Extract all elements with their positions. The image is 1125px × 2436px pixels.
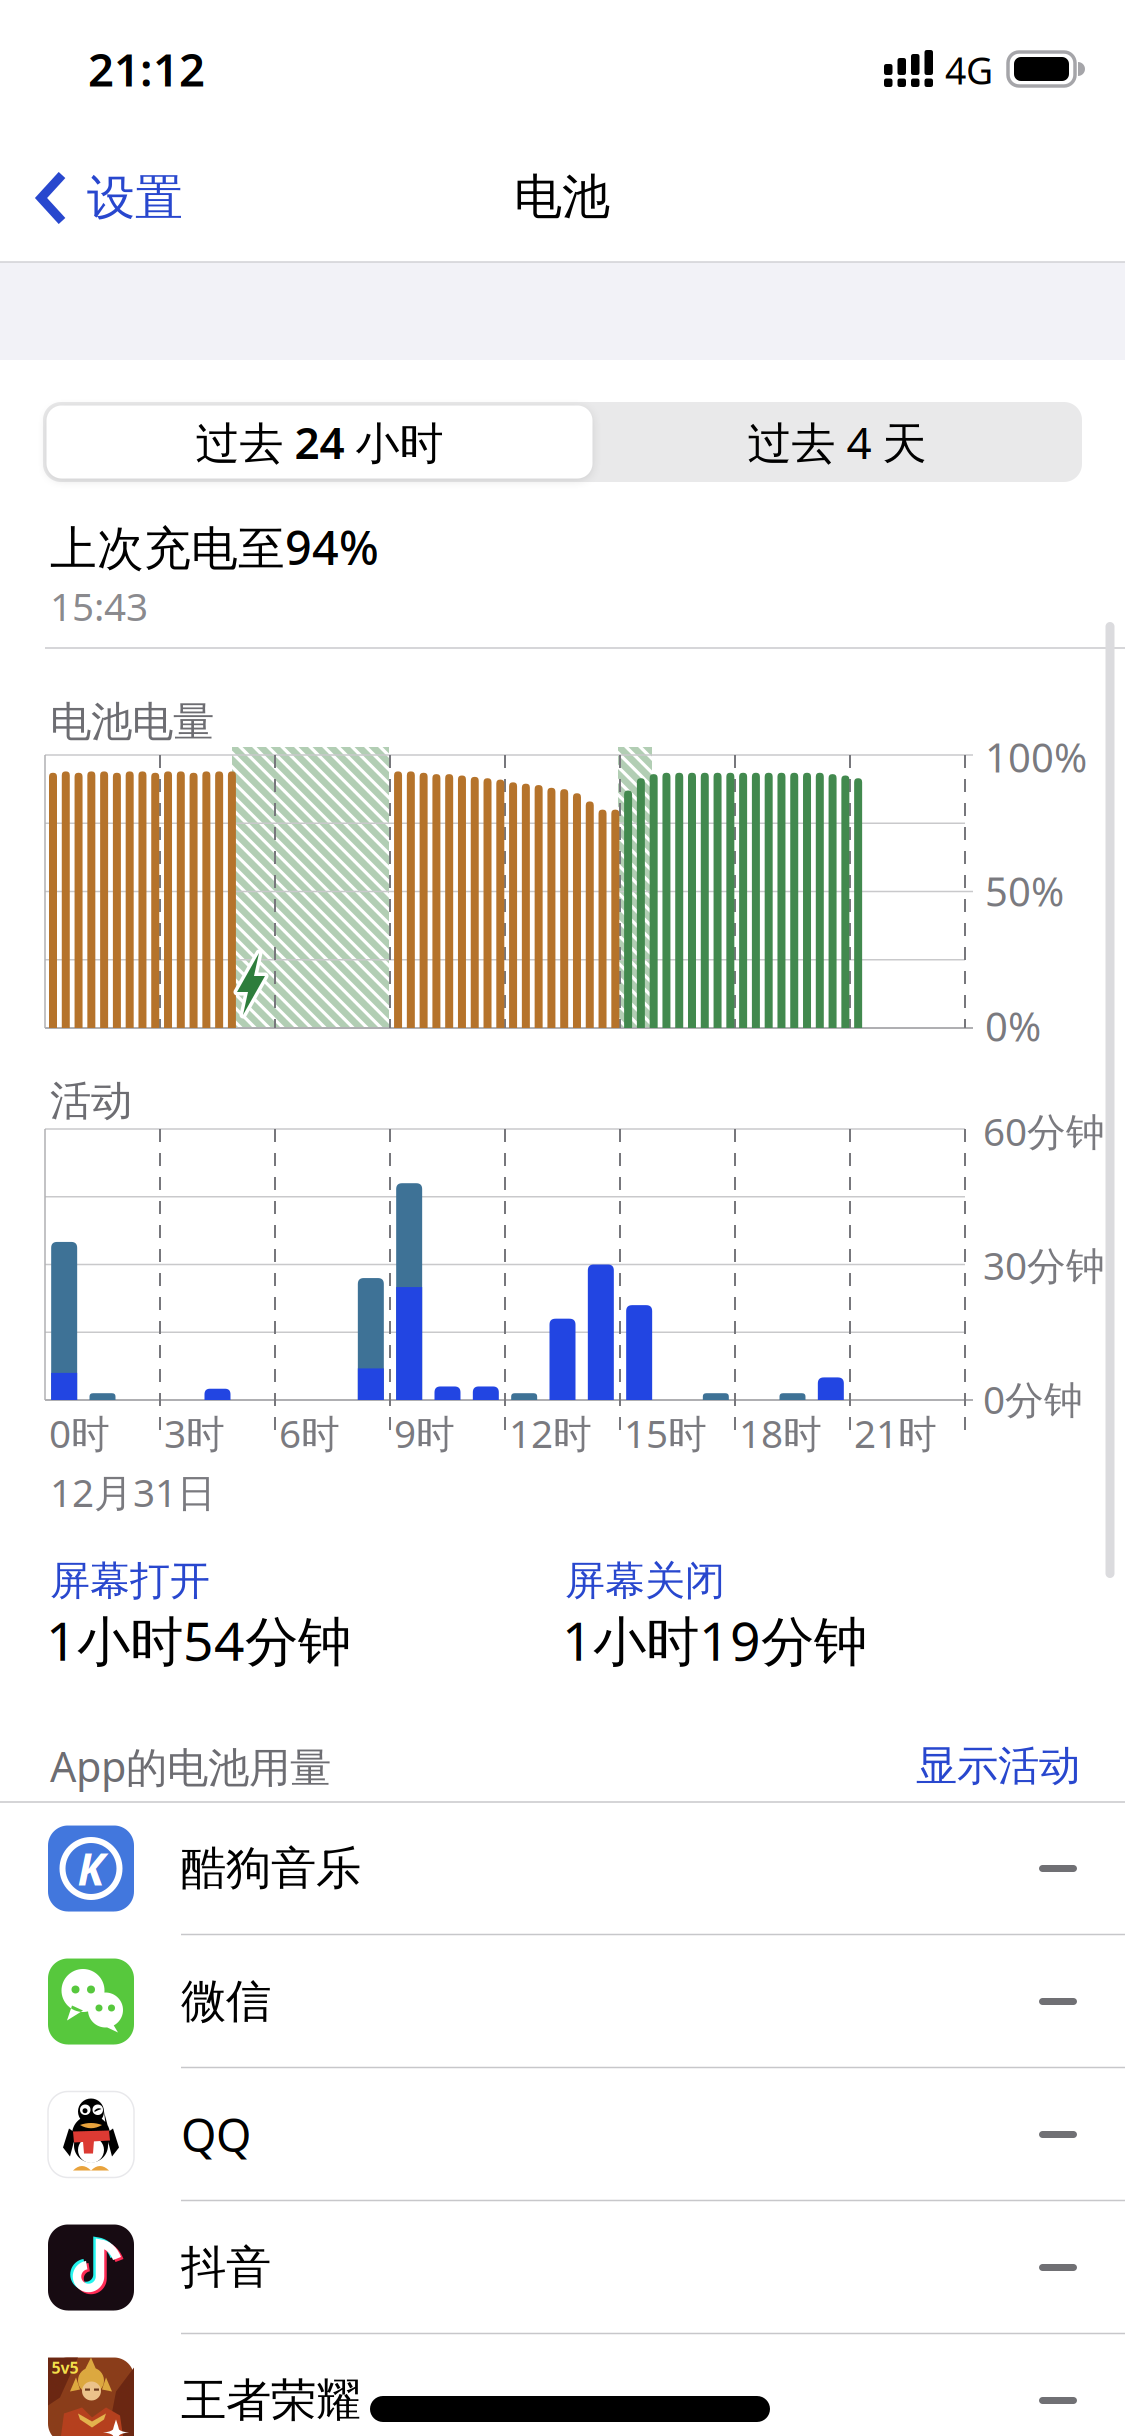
button[interactable]: K xyxy=(48,1802,1077,1935)
staticText: 18时 xyxy=(739,1407,822,1459)
staticText: 12时 xyxy=(509,1407,592,1459)
staticText: 活动 xyxy=(50,1076,132,1126)
button[interactable]: QQ xyxy=(48,2068,1077,2201)
staticText: 电池 xyxy=(514,167,610,226)
staticText: QQ xyxy=(181,2104,251,2165)
staticText: 酷狗音乐 xyxy=(181,1841,361,1896)
staticText: 30分钟 xyxy=(983,1239,1105,1291)
staticText: 1小时54分钟 xyxy=(46,1605,351,1675)
button[interactable]: 5v5 xyxy=(48,2334,1077,2436)
staticText: 60分钟 xyxy=(983,1105,1105,1157)
staticText: 100% xyxy=(985,730,1087,783)
staticText: 0% xyxy=(985,999,1041,1052)
staticText: 12月31日 xyxy=(50,1466,216,1518)
staticText: 上次充电至94% xyxy=(50,516,379,578)
staticText: 21时 xyxy=(854,1407,937,1459)
staticText: 王者荣耀 xyxy=(181,2373,361,2428)
staticText: 21:12 xyxy=(88,39,205,99)
staticText: 50% xyxy=(985,864,1064,917)
staticText: 9时 xyxy=(394,1407,455,1459)
button[interactable]: 微信 xyxy=(48,1935,1077,2068)
button[interactable]: 设置 xyxy=(38,163,298,233)
button[interactable]: 抖音 xyxy=(48,2201,1077,2334)
button[interactable]: 过去 24 小时 xyxy=(46,405,592,478)
staticText: K xyxy=(77,1839,104,1898)
staticText: 屏幕打开 xyxy=(50,1556,210,1605)
staticText: 0时 xyxy=(49,1407,110,1459)
staticText: 抖音 xyxy=(181,2240,271,2295)
staticText: 显示活动 xyxy=(916,1741,1080,1791)
staticText: 6时 xyxy=(279,1407,340,1459)
staticText: 过去 4 天 xyxy=(747,413,926,471)
staticText: 电池电量 xyxy=(50,697,214,747)
staticText: 设置 xyxy=(87,168,183,227)
staticText: 微信 xyxy=(181,1974,271,2029)
staticText: 3时 xyxy=(164,1407,225,1459)
button[interactable]: 显示活动 xyxy=(780,1736,1080,1796)
staticText: 4G xyxy=(945,45,993,95)
staticText: 15时 xyxy=(624,1407,707,1459)
staticText: 过去 24 小时 xyxy=(195,413,443,471)
staticText: 1小时19分钟 xyxy=(562,1605,867,1675)
staticText: 屏幕关闭 xyxy=(565,1556,725,1605)
staticText: 15:43 xyxy=(50,580,148,632)
staticText: 5v5 xyxy=(51,2357,78,2378)
staticText: 0分钟 xyxy=(983,1373,1083,1425)
staticText: App的电池用量 xyxy=(50,1738,331,1793)
button[interactable]: 过去 4 天 xyxy=(592,402,1082,482)
